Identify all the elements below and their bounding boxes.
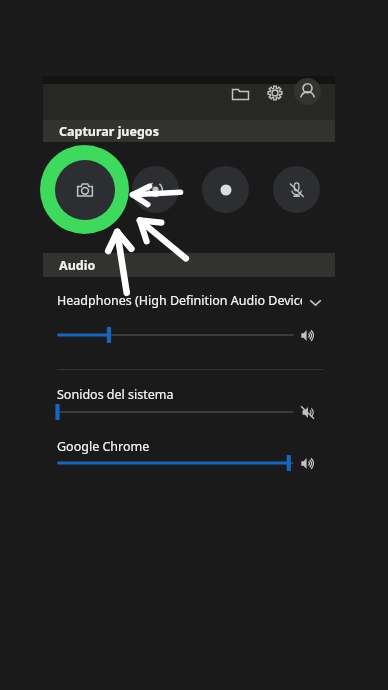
button[interactable]: Settings	[261, 79, 289, 107]
button[interactable]: Record last 30 seconds	[132, 166, 179, 213]
button[interactable]: System sounds volume	[53, 403, 298, 421]
button[interactable]: Unmute	[299, 404, 315, 420]
button[interactable]: Select audio device	[57, 292, 323, 312]
button[interactable]: Chrome volume	[53, 454, 298, 472]
button[interactable]: Audio	[43, 253, 335, 277]
button[interactable]: Start recording	[202, 166, 249, 213]
staticText: Barra de juegos	[168, 82, 235, 94]
button[interactable]: Account	[294, 78, 321, 105]
staticText: Audio	[59, 257, 96, 274]
button[interactable]: Mute	[299, 327, 315, 343]
staticText: Sonidos del sistema	[57, 386, 174, 403]
staticText: Headphones (High Definition Audio Device…	[57, 292, 302, 309]
button[interactable]: Open capture folder	[226, 80, 254, 108]
button[interactable]: Take screenshot	[40, 145, 129, 234]
staticText: Google Chrome	[57, 438, 150, 455]
staticText: Capturar juegos	[59, 123, 159, 140]
button[interactable]: Headphones volume	[53, 326, 298, 344]
button[interactable]: Mute	[299, 455, 315, 471]
button[interactable]: Capturar juegos	[43, 120, 335, 142]
button[interactable]: Microphone off	[273, 166, 320, 213]
